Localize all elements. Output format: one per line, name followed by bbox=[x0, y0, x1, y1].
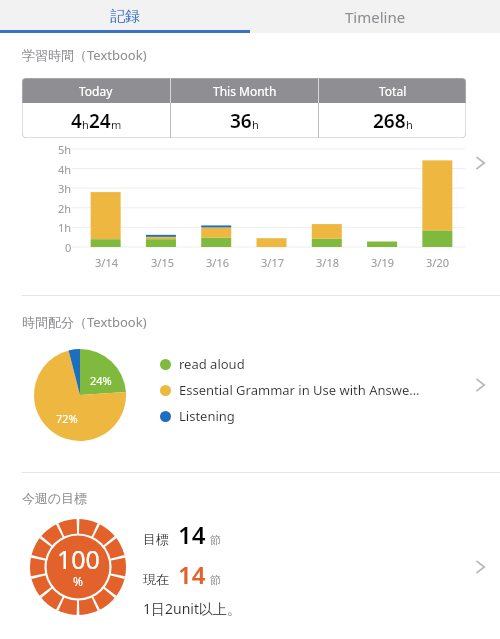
staticText: 4 bbox=[71, 108, 82, 134]
button[interactable]: 今週の目標の詳細 bbox=[471, 557, 491, 577]
staticText: % bbox=[73, 573, 83, 589]
staticText: 14 bbox=[178, 518, 206, 551]
staticText: 時間配分（Textbook) bbox=[22, 313, 147, 331]
staticText: Timeline bbox=[345, 7, 406, 27]
staticText: This Month bbox=[213, 83, 277, 99]
staticText: Essential Grammar in Use with Answe… bbox=[179, 381, 420, 399]
staticText: 節 bbox=[210, 573, 221, 587]
staticText: Listening bbox=[179, 407, 235, 425]
staticText: 14 bbox=[178, 558, 206, 591]
staticText: 3/15 bbox=[151, 255, 174, 270]
staticText: 0 bbox=[65, 240, 72, 255]
staticText: 3h bbox=[58, 181, 72, 196]
staticText: 24 bbox=[89, 108, 111, 134]
staticText: h bbox=[252, 117, 259, 132]
staticText: h bbox=[82, 117, 89, 132]
staticText: 24% bbox=[90, 373, 112, 388]
staticText: 目標 bbox=[143, 531, 169, 547]
staticText: 現在 bbox=[143, 571, 169, 587]
button[interactable]: 記録 bbox=[0, 0, 250, 33]
staticText: 100 bbox=[57, 542, 100, 576]
button[interactable]: Today bbox=[22, 78, 466, 138]
staticText: 学習時間（Textbook) bbox=[22, 46, 147, 64]
staticText: read aloud bbox=[179, 355, 245, 373]
staticText: h bbox=[406, 117, 413, 132]
staticText: 記録 bbox=[110, 7, 140, 26]
staticText: 3/20 bbox=[426, 255, 449, 270]
button[interactable]: read aloud bbox=[160, 355, 245, 373]
staticText: 268 bbox=[373, 108, 406, 134]
staticText: 5h bbox=[58, 142, 72, 157]
staticText: 今週の目標 bbox=[22, 490, 88, 506]
button[interactable]: 時間配分の詳細 bbox=[471, 375, 491, 395]
staticText: 1h bbox=[58, 220, 72, 235]
staticText: 3/19 bbox=[371, 255, 394, 270]
staticText: 1日2unit以上。 bbox=[143, 599, 241, 618]
button[interactable]: Essential Grammar in Use with Answe… bbox=[160, 381, 420, 399]
button[interactable]: Timeline bbox=[250, 0, 500, 33]
staticText: 節 bbox=[210, 533, 221, 547]
staticText: 2h bbox=[58, 201, 72, 216]
staticText: 3/14 bbox=[95, 255, 118, 270]
staticText: 72% bbox=[56, 411, 78, 426]
staticText: 3/18 bbox=[316, 255, 339, 270]
staticText: 3/16 bbox=[206, 255, 229, 270]
button[interactable]: Listening bbox=[160, 407, 235, 425]
staticText: 4h bbox=[58, 162, 72, 177]
button[interactable]: 学習時間の詳細 bbox=[471, 153, 491, 173]
staticText: Total bbox=[379, 83, 407, 99]
staticText: 3/17 bbox=[261, 255, 284, 270]
staticText: Today bbox=[79, 83, 113, 99]
staticText: m bbox=[111, 117, 122, 132]
staticText: 36 bbox=[230, 108, 252, 134]
